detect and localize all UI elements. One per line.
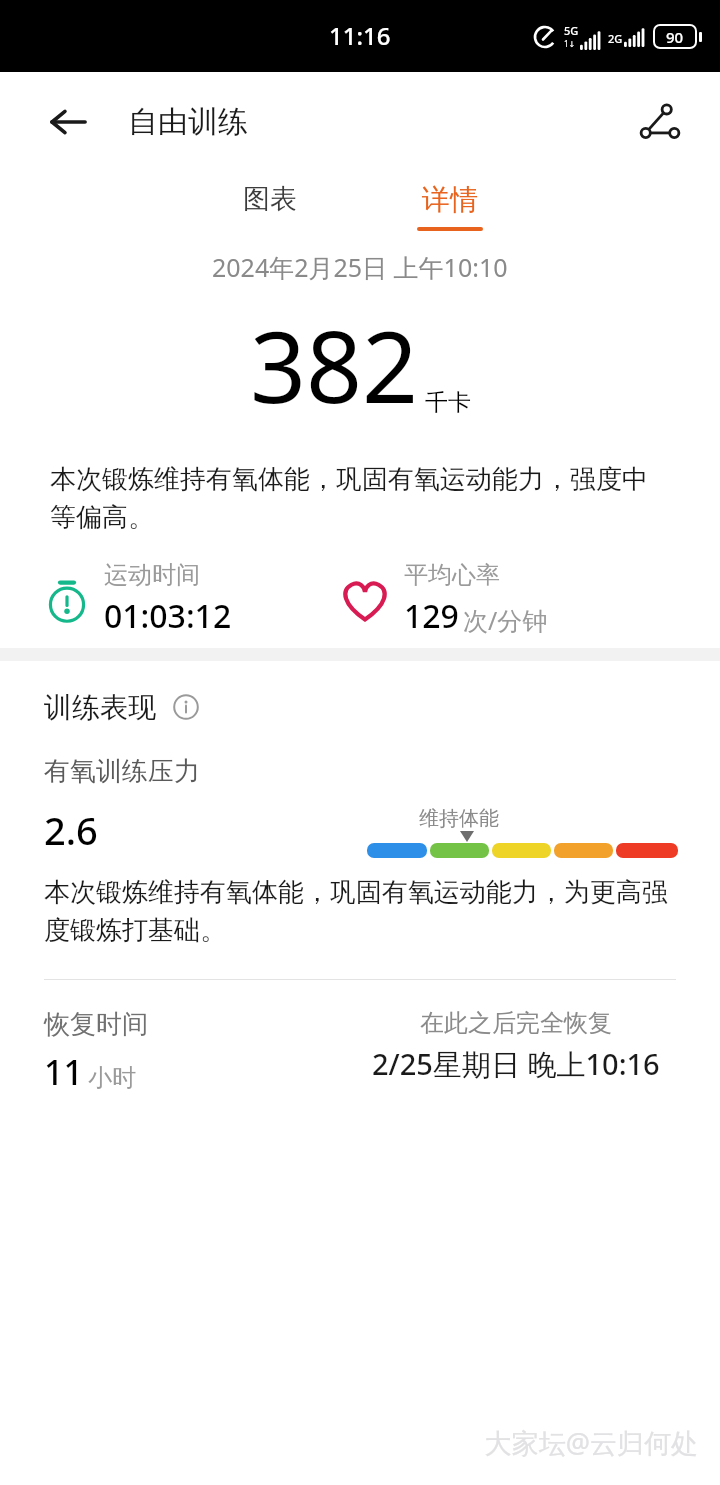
staticText: 01:03:12 <box>104 594 232 638</box>
staticText: 运动时间 <box>104 560 200 590</box>
staticText: 5G <box>564 23 579 38</box>
staticText: 训练表现 <box>44 690 156 725</box>
button[interactable]: Info <box>168 689 204 725</box>
staticText: 图表 <box>243 182 297 216</box>
staticText: 1↓ <box>564 38 576 49</box>
staticText: 有氧训练压力 <box>44 755 200 788</box>
staticText: 129 <box>404 594 459 638</box>
staticText: 大家坛@云归何处 <box>484 1424 698 1461</box>
staticText: 千卡 <box>425 388 471 417</box>
staticText: 恢复时间 <box>44 1008 148 1041</box>
staticText: 90 <box>666 27 684 47</box>
staticText: 在此之后完全恢复 <box>420 1008 612 1038</box>
staticText: 本次锻炼维持有氧体能，巩固有氧运动能力，强度中等偏高。 <box>50 463 672 534</box>
button[interactable]: 详情 <box>380 172 520 250</box>
button[interactable]: Share <box>634 96 686 148</box>
staticText: 2G <box>608 31 623 46</box>
staticText: 平均心率 <box>404 560 500 590</box>
staticText: 详情 <box>422 182 478 217</box>
staticText: 本次锻炼维持有氧体能，巩固有氧运动能力，为更高强度锻炼打基础。 <box>44 876 676 947</box>
button[interactable]: Back <box>44 98 92 146</box>
staticText: 2/25星期日 晚上10:16 <box>372 1044 660 1084</box>
staticText: 382 <box>250 298 419 431</box>
staticText: 自由训练 <box>128 103 248 141</box>
button[interactable]: 图表 <box>200 172 340 250</box>
staticText: 2024年2月25日 上午10:10 <box>212 250 508 284</box>
staticText: 次/分钟 <box>463 603 548 637</box>
staticText: 小时 <box>88 1063 136 1093</box>
staticText: 11 <box>44 1049 83 1095</box>
staticText: 11:16 <box>329 19 391 52</box>
staticText: 维持体能 <box>419 806 499 831</box>
staticText: 2.6 <box>44 804 98 856</box>
